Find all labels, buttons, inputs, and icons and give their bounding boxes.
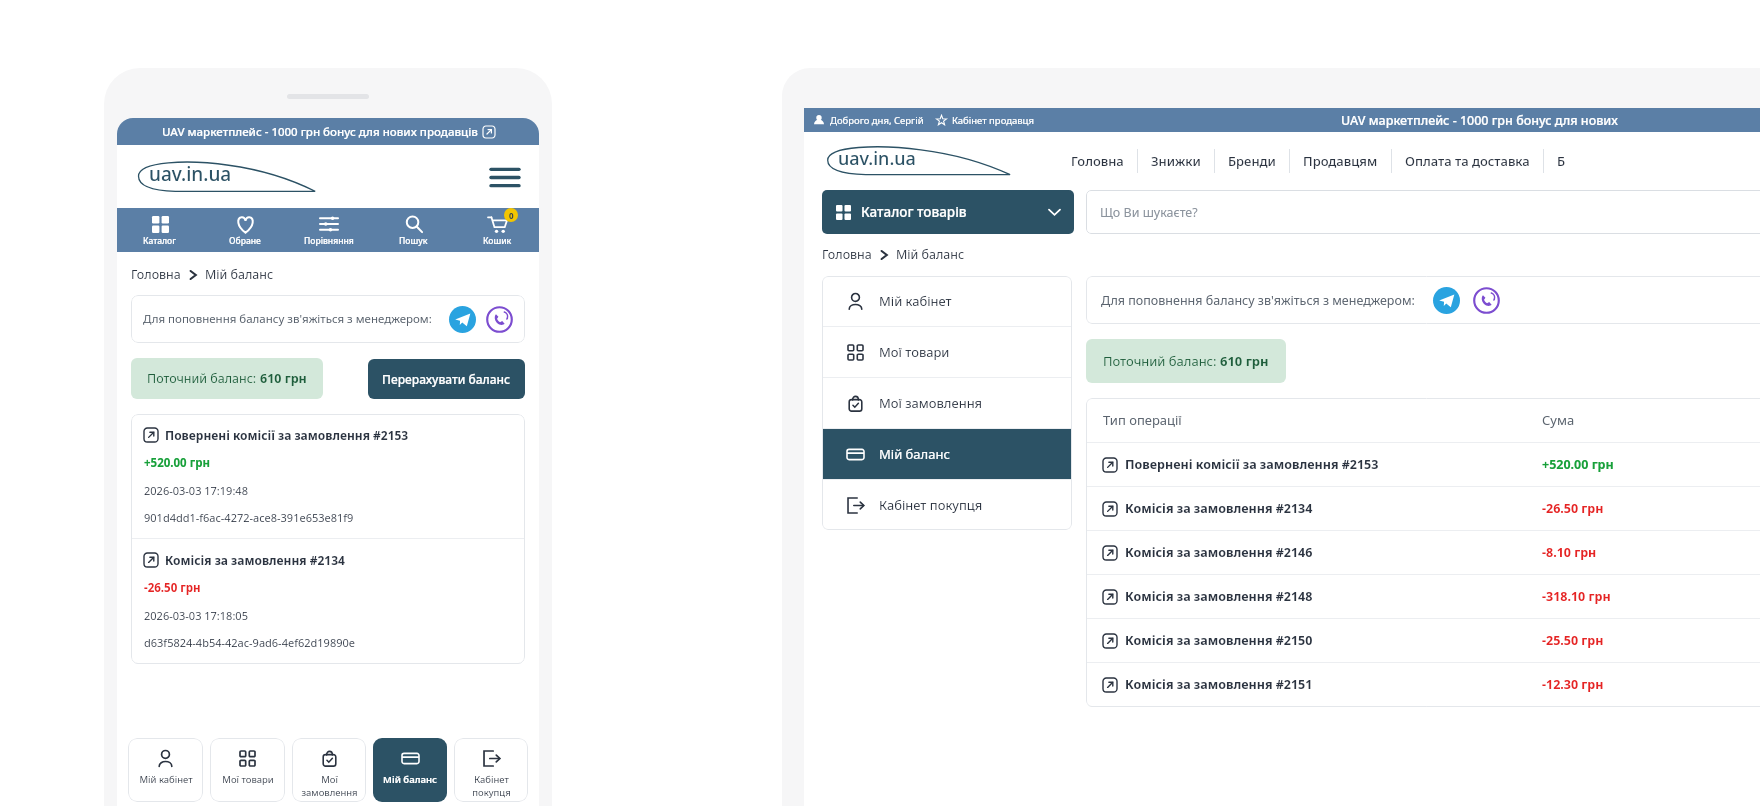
staticText: -8.10 грн	[1542, 544, 1760, 561]
staticText: d63f5824-4b54-42ac-9ad6-4ef62d19890e	[144, 635, 355, 650]
staticText: Перерахувати баланс	[382, 371, 511, 387]
button[interactable]: Комісія за замовлення #2146	[1086, 531, 1760, 574]
staticText: UAV маркетплейс - 1000 грн бонус для нов…	[1341, 112, 1618, 129]
staticText: 610 грн	[1220, 352, 1269, 370]
button[interactable]: Поточний баланс:	[1086, 339, 1286, 383]
staticText: Кабінет покупця	[879, 496, 983, 514]
button[interactable]: Каталог	[117, 208, 202, 252]
button[interactable]: Мої товари	[210, 738, 285, 802]
button[interactable]: Кабінет покупця	[822, 480, 1072, 530]
staticText: Мій кабінет	[879, 292, 952, 310]
button[interactable]: Viber	[486, 306, 513, 333]
button[interactable]: Поточний баланс:	[131, 358, 323, 399]
staticText: Поточний баланс:	[1103, 352, 1220, 370]
button[interactable]: Б	[1544, 143, 1579, 179]
staticText: -12.30 грн	[1542, 676, 1760, 693]
staticText: Сума	[1542, 411, 1760, 429]
staticText: Кабінет	[474, 773, 509, 786]
staticText: Комісія за замовлення #2148	[1125, 588, 1313, 605]
staticText: +520.00 грн	[144, 455, 210, 471]
staticText: +520.00 грн	[1542, 456, 1760, 473]
button[interactable]: Повернені комісії за замовлення #2153	[131, 414, 525, 538]
button[interactable]: Мій кабінет	[822, 276, 1072, 326]
button[interactable]: Продавцям	[1290, 143, 1391, 179]
staticText: Комісія за замовлення #2146	[1125, 544, 1313, 561]
staticText: -26.50 грн	[144, 580, 201, 596]
staticText: Мої замовлення	[879, 394, 983, 412]
button[interactable]: Мої товари	[822, 327, 1072, 377]
staticText: Для поповнення балансу зв'яжіться з мене…	[1101, 292, 1415, 309]
staticText: замовлення	[301, 786, 358, 799]
staticText: Мій баланс	[896, 246, 965, 263]
staticText: Порівняння	[304, 235, 354, 247]
staticText: -25.50 грн	[1542, 632, 1760, 649]
button[interactable]: Меню	[487, 159, 523, 195]
staticText: -318.10 грн	[1542, 588, 1760, 605]
button[interactable]: Комісія за замовлення #2148	[1086, 575, 1760, 618]
staticText: Б	[1557, 152, 1566, 170]
staticText: Мій баланс	[205, 266, 274, 283]
button[interactable]: Обране	[202, 208, 287, 252]
staticText: Мій баланс	[879, 445, 950, 463]
button[interactable]: Комісія за замовлення #2134	[1086, 487, 1760, 530]
staticText: 2026-03-03 17:18:05	[144, 608, 248, 623]
staticText: Каталог товарів	[861, 203, 967, 221]
staticText: покупця	[472, 786, 511, 799]
button[interactable]: Головна	[131, 266, 181, 283]
button[interactable]: UAV маркетплейс - 1000 грн бонус для нов…	[117, 118, 539, 145]
button[interactable]: Бренди	[1215, 143, 1289, 179]
button[interactable]: Комісія за замовлення #2151	[1086, 663, 1760, 706]
button[interactable]: Telegram	[1433, 287, 1460, 314]
staticText: Оплата та доставка	[1405, 152, 1530, 170]
staticText: Комісія за замовлення #2134	[165, 552, 345, 568]
staticText: Комісія за замовлення #2151	[1125, 676, 1313, 693]
button[interactable]: Що Ви шукаєте?	[1086, 190, 1760, 234]
staticText: Головна	[1071, 152, 1124, 170]
button[interactable]: Оплата та доставка	[1392, 143, 1543, 179]
button[interactable]: Мій баланс	[373, 738, 447, 802]
staticText: 901d4dd1-f6ac-4272-ace8-391e653e81f9	[144, 510, 354, 525]
staticText: Мої	[321, 773, 338, 786]
staticText: Каталог	[143, 235, 177, 247]
staticText: 0	[509, 210, 514, 221]
staticText: uav.in.ua	[838, 146, 916, 171]
button[interactable]: Мої	[292, 738, 366, 802]
button[interactable]: Головна	[822, 246, 872, 263]
button[interactable]: Мій баланс	[822, 429, 1072, 479]
button[interactable]: Мій кабінет	[128, 738, 203, 802]
staticText: Бренди	[1228, 152, 1276, 170]
button[interactable]: Порівняння	[287, 208, 371, 252]
button[interactable]: Комісія за замовлення #2150	[1086, 619, 1760, 662]
button[interactable]: Мої замовлення	[822, 378, 1072, 428]
button[interactable]: Пошук	[371, 208, 455, 252]
staticText: Мій баланс	[383, 773, 437, 786]
staticText: Що Ви шукаєте?	[1100, 204, 1198, 221]
staticText: uav.in.ua	[149, 161, 232, 187]
button[interactable]: Комісія за замовлення #2134	[131, 539, 525, 663]
button[interactable]: Telegram	[449, 306, 476, 333]
button[interactable]: Кабінет	[454, 738, 528, 802]
staticText: Комісія за замовлення #2134	[1125, 500, 1313, 517]
staticText: Комісія за замовлення #2150	[1125, 632, 1313, 649]
staticText: UAV маркетплейс - 1000 грн бонус для нов…	[162, 124, 478, 140]
staticText: Пошук	[399, 235, 428, 247]
button[interactable]: Каталог товарів	[822, 190, 1074, 234]
staticText: 2026-03-03 17:19:48	[144, 483, 248, 498]
staticText: Продавцям	[1303, 152, 1378, 170]
button[interactable]: Доброго дня, Сергій	[830, 114, 924, 127]
button[interactable]: Кошик	[455, 208, 539, 252]
staticText: Для поповнення балансу зв'яжіться з мене…	[143, 311, 432, 327]
staticText: Поточний баланс:	[147, 370, 260, 387]
button[interactable]: Головна	[1058, 143, 1137, 179]
staticText: Тип операції	[1103, 411, 1542, 429]
button[interactable]: Перерахувати баланс	[368, 359, 525, 399]
button[interactable]: Знижки	[1138, 143, 1214, 179]
staticText: Мої товари	[222, 773, 274, 786]
staticText: Мої товари	[879, 343, 950, 361]
button[interactable]: Viber	[1473, 287, 1500, 314]
button[interactable]: Кабінет продавця	[952, 114, 1034, 127]
button[interactable]: Повернені комісії за замовлення #2153	[1086, 443, 1760, 486]
staticText: Знижки	[1151, 152, 1201, 170]
staticText: Обране	[229, 235, 261, 247]
staticText: 610 грн	[260, 370, 307, 387]
